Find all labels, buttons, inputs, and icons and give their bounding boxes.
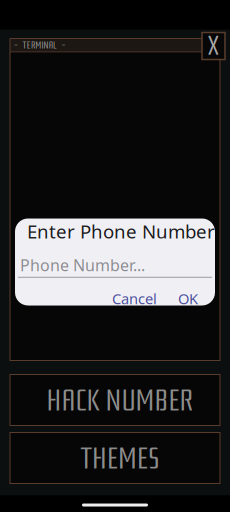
button[interactable]: THEMES bbox=[10, 432, 220, 483]
button[interactable]: HACK NUMBER bbox=[10, 374, 220, 425]
staticText: Cancel bbox=[112, 289, 157, 308]
staticText: THEMES bbox=[80, 442, 160, 476]
staticText: X bbox=[207, 31, 219, 61]
staticText: HACK NUMBER bbox=[46, 384, 193, 418]
button[interactable]: Close terminal bbox=[202, 32, 225, 59]
staticText: Enter Phone Number bbox=[27, 219, 215, 243]
staticText: Phone Number... bbox=[20, 254, 145, 276]
button[interactable]: Cancel bbox=[112, 289, 157, 308]
staticText: - TERMINAL - bbox=[14, 40, 66, 51]
staticText: OK bbox=[178, 289, 198, 308]
button[interactable]: OK bbox=[178, 289, 198, 308]
